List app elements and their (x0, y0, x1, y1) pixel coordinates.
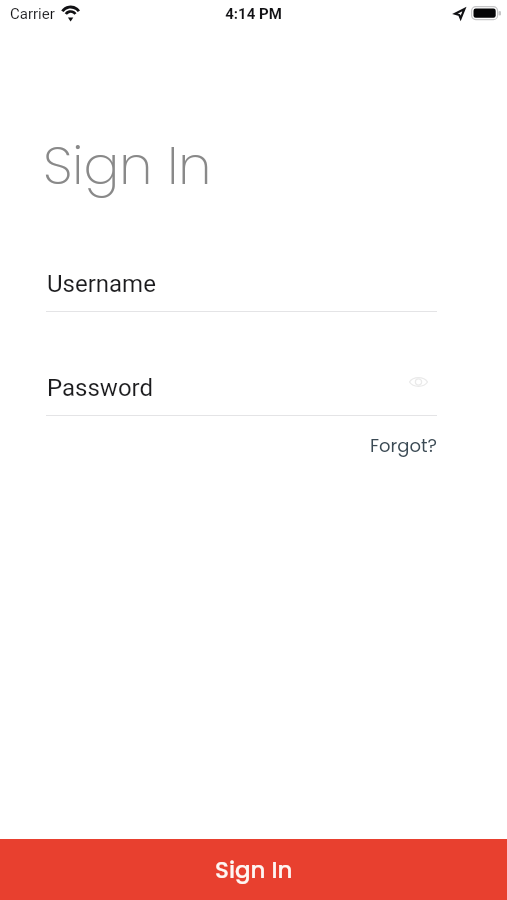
other: Location (454, 8, 467, 21)
staticText: Username (47, 270, 156, 298)
other: Battery full (471, 6, 502, 20)
button[interactable]: Forgot? (358, 430, 437, 460)
button[interactable]: Sign In (0, 839, 507, 900)
staticText: Sign In (215, 854, 293, 886)
button[interactable]: Username (46, 268, 437, 314)
staticText: Forgot? (370, 433, 437, 458)
button[interactable]: Show password (400, 364, 436, 399)
staticText: 4:14 PM (225, 5, 282, 23)
staticText: Password (47, 374, 154, 402)
other: Wi-Fi (61, 6, 81, 21)
staticText: Sign In (43, 128, 212, 202)
button[interactable]: Password (46, 372, 437, 418)
staticText: Carrier (10, 5, 55, 23)
